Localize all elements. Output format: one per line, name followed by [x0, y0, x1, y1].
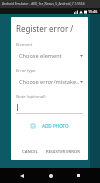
button[interactable]: Home: [45, 170, 57, 182]
button[interactable]: Back: [16, 170, 28, 182]
other: Open dropdown: [80, 55, 83, 57]
button[interactable]: Choose element: [16, 51, 83, 61]
other: Open dropdown: [80, 81, 83, 83]
staticText: Note (optional): [16, 94, 46, 100]
button[interactable]: CANCEL: [19, 147, 41, 157]
button[interactable]: Choose error/mistake..: [16, 77, 83, 87]
staticText: Android Emulator - AVD_for_Nexus_5_Andro…: [2, 2, 85, 6]
button[interactable]: [16, 104, 83, 114]
button[interactable]: REGISTER ERROR: [43, 147, 83, 157]
button[interactable]: ADD PHOTO: [28, 122, 72, 130]
staticText: REGISTER ERROR: [46, 149, 80, 155]
staticText: Choose element: [19, 52, 80, 60]
staticText: Element: [16, 42, 33, 48]
staticText: ADD PHOTO: [42, 123, 69, 129]
staticText: CANCEL: [22, 149, 38, 155]
staticText: Register error / mistake: [16, 23, 83, 34]
button[interactable]: Recent apps: [73, 170, 84, 181]
staticText: Error type: [16, 68, 36, 74]
staticText: 15:46: [88, 9, 98, 14]
staticText: Choose error/mistake..: [19, 78, 80, 86]
